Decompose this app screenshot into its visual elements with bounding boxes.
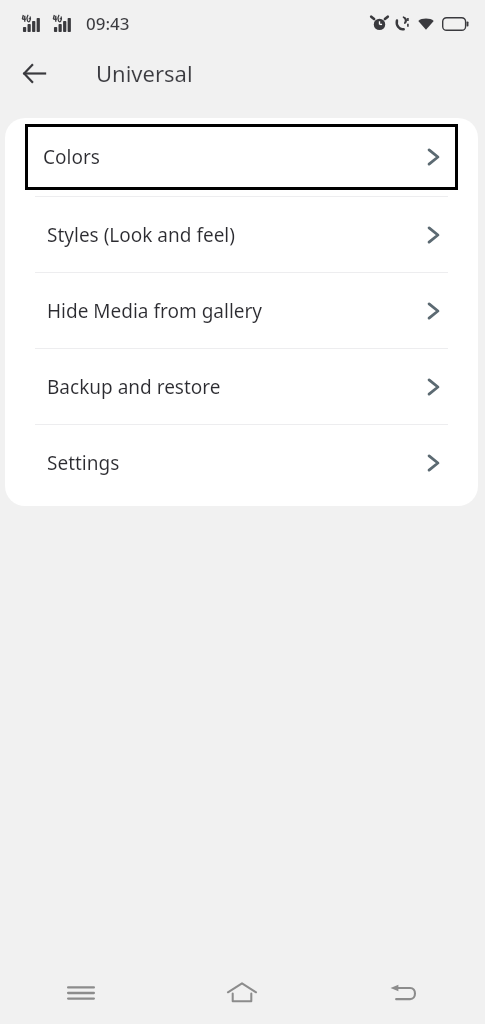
button[interactable]: Back <box>13 52 55 94</box>
button[interactable]: Back <box>323 962 485 1024</box>
button[interactable]: Colors <box>25 124 458 190</box>
staticText: Settings <box>47 450 120 476</box>
button[interactable]: Home <box>161 962 323 1024</box>
button[interactable]: Styles (Look and feel) <box>5 197 478 272</box>
staticText: Hide Media from gallery <box>47 298 263 324</box>
staticText: 09:43 <box>86 12 130 35</box>
staticText: Universal <box>96 58 193 88</box>
button[interactable]: Recent apps <box>0 962 161 1024</box>
button[interactable]: Settings <box>5 425 478 500</box>
button[interactable]: Backup and restore <box>5 349 478 424</box>
staticText: Styles (Look and feel) <box>47 222 235 248</box>
staticText: Colors <box>43 144 100 170</box>
button[interactable]: Hide Media from gallery <box>5 273 478 348</box>
staticText: Backup and restore <box>47 374 221 400</box>
